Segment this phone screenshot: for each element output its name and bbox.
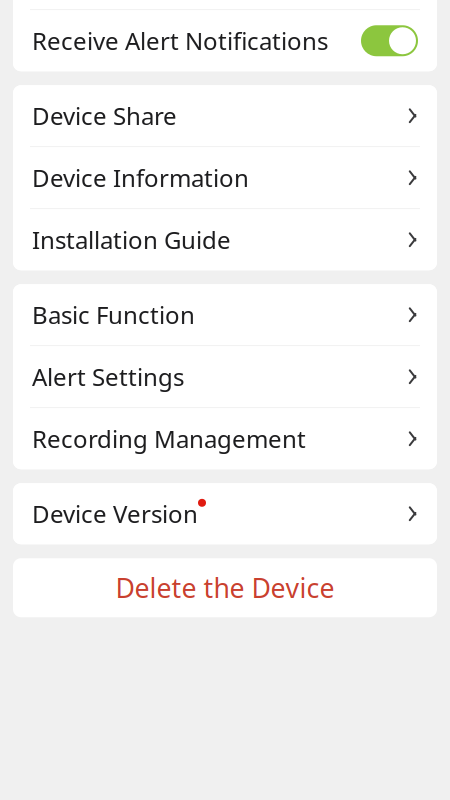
staticText: Receive Alert Notifications [32, 25, 328, 57]
staticText: Installation Guide [32, 224, 231, 256]
staticText: Basic Function [32, 299, 195, 331]
staticText: Device Version [32, 498, 198, 530]
button[interactable]: Installation Guide [13, 209, 437, 270]
button[interactable]: Device Share [13, 85, 437, 146]
button[interactable]: Device Version [13, 483, 437, 544]
staticText: Delete the Device [115, 570, 334, 605]
staticText: Device Information [32, 162, 249, 194]
staticText: Device Share [32, 100, 177, 132]
button[interactable]: Delete the Device [0, 558, 450, 617]
button[interactable]: Basic Function [13, 284, 437, 345]
button[interactable]: Alert Settings [13, 346, 437, 407]
staticText: Alert Settings [32, 361, 184, 393]
button[interactable]: Recording Management [13, 408, 437, 469]
button[interactable]: Device Information [13, 147, 437, 208]
staticText: Recording Management [32, 423, 306, 455]
button[interactable]: Receive Alert Notifications [13, 10, 437, 71]
